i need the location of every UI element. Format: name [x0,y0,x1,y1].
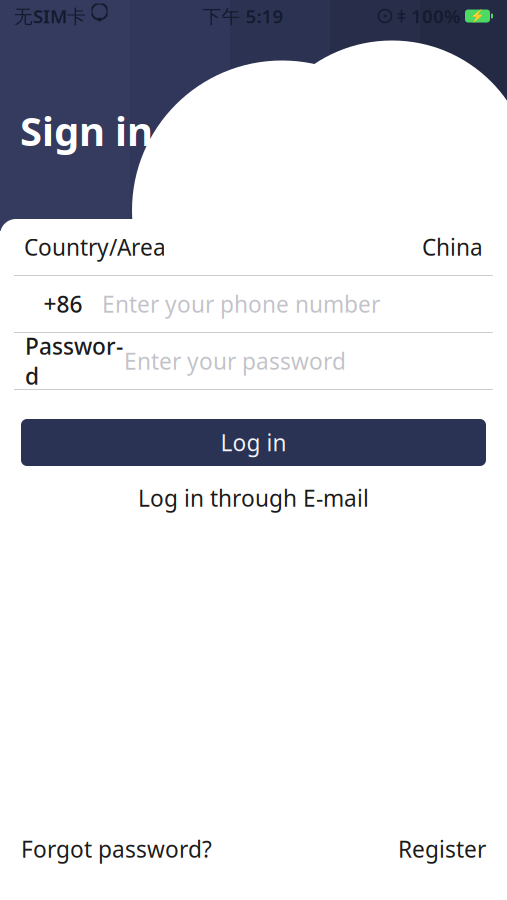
staticText: Log in [220,427,286,457]
button[interactable]: Log in through E-mail [21,481,486,515]
button[interactable]: +86 [0,276,507,332]
staticText: 100% [411,4,460,28]
staticText: Forgot password? [21,834,212,864]
staticText: +86 [43,289,82,319]
staticText: Sign in [20,104,153,157]
staticText: 下午 5:19 [202,4,283,28]
staticText: Register [398,834,486,864]
staticText: Enter your phone number [102,289,380,319]
staticText: 无SIM卡 [14,4,86,28]
staticText: ⚡ [470,9,485,23]
button[interactable]: Password [0,333,507,389]
button[interactable]: Country/Area [0,219,507,275]
staticText: Log in through E-mail [138,483,369,513]
staticText: Password [25,331,123,391]
button[interactable]: Register [398,828,486,870]
staticText: Country/Area [24,232,166,262]
staticText: Enter your password [124,346,346,376]
staticText: China [422,232,483,262]
button[interactable]: Forgot password? [21,828,212,870]
button[interactable]: Log in [21,419,486,466]
